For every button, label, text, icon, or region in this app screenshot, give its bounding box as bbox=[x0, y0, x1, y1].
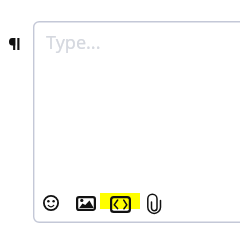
button[interactable]: Paragraph style bbox=[9, 38, 20, 50]
button[interactable]: Attach file bbox=[147, 193, 162, 214]
button[interactable]: Insert emoji bbox=[43, 195, 59, 211]
button[interactable]: Insert image bbox=[76, 196, 96, 211]
staticText: Type... bbox=[46, 30, 101, 55]
button[interactable]: Insert code bbox=[110, 196, 131, 213]
